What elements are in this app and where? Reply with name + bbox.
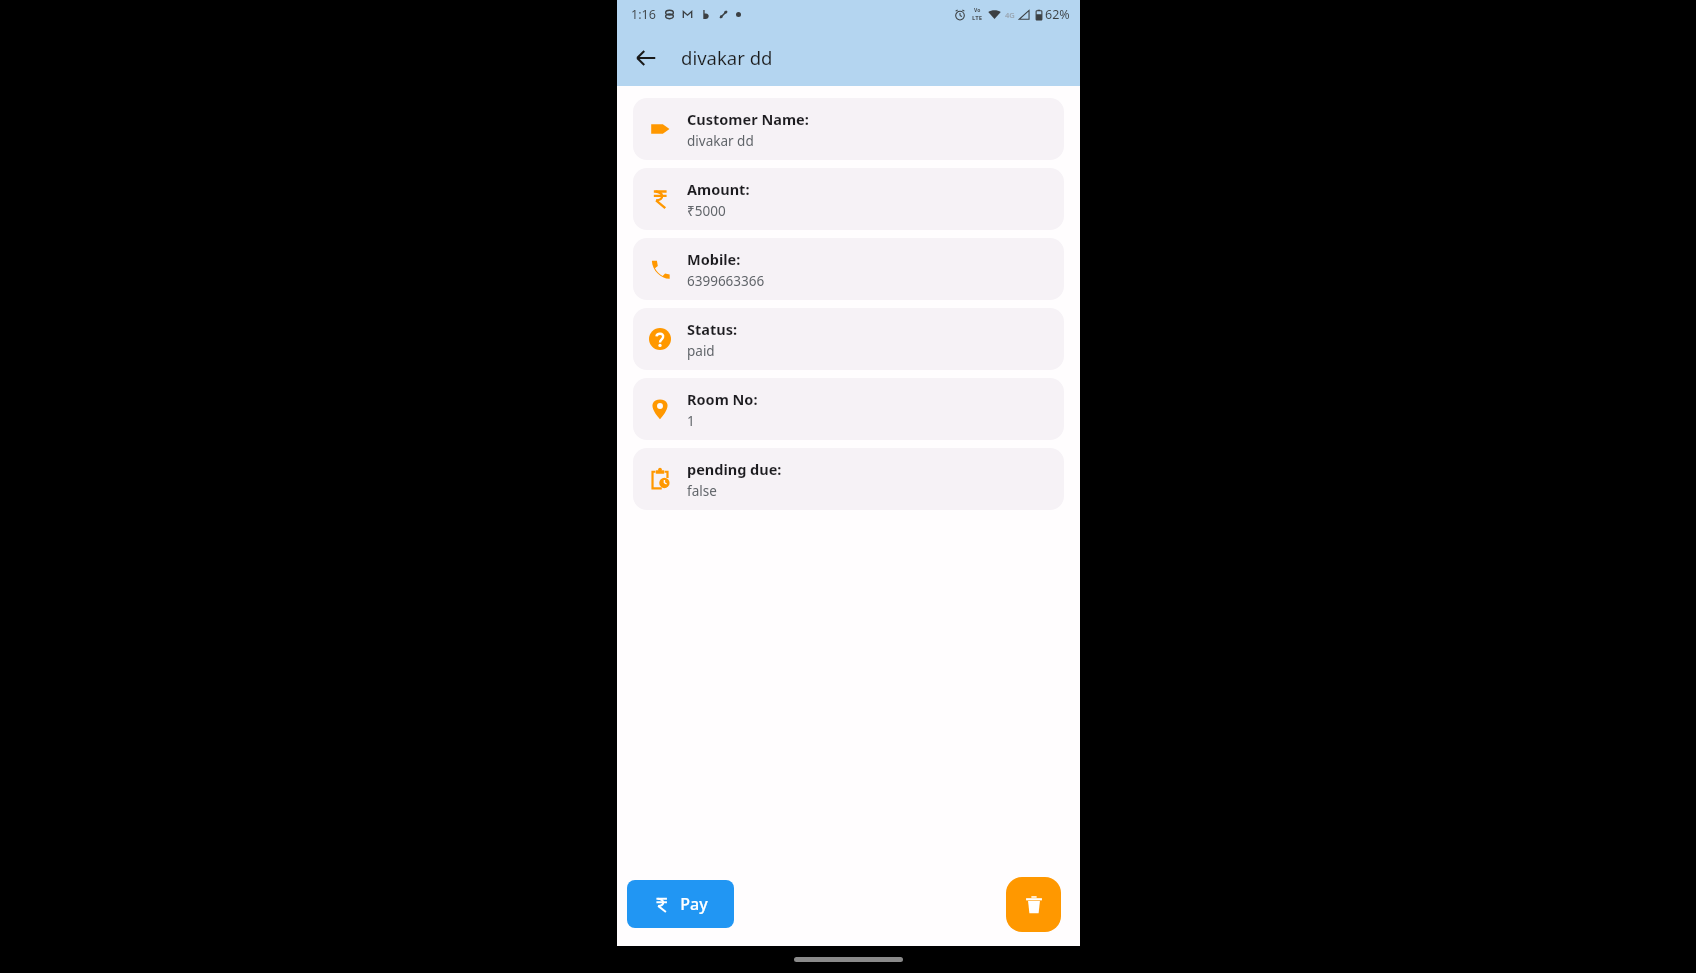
staticText: 62%: [1045, 6, 1070, 23]
staticText: ₹5000: [687, 202, 726, 220]
button[interactable]: Back: [623, 35, 669, 81]
staticText: LTE: [972, 14, 983, 22]
staticText: 1:16: [631, 6, 656, 23]
staticText: 1: [687, 412, 695, 430]
staticText: Vo: [974, 7, 981, 14]
staticText: pending due:: [687, 459, 782, 479]
staticText: Status:: [687, 319, 738, 339]
staticText: Room No:: [687, 389, 758, 409]
button[interactable]: Pay: [627, 880, 734, 928]
button[interactable]: Status:: [633, 308, 1064, 370]
button[interactable]: Room No:: [633, 378, 1064, 440]
staticText: Pay: [680, 893, 708, 915]
button[interactable]: Delete: [1006, 877, 1061, 932]
staticText: 6399663366: [687, 272, 765, 290]
button[interactable]: Amount:: [633, 168, 1064, 230]
staticText: Amount:: [687, 179, 750, 199]
staticText: Mobile:: [687, 249, 741, 269]
staticText: false: [687, 482, 717, 500]
staticText: divakar dd: [687, 132, 754, 150]
staticText: divakar dd: [681, 45, 773, 70]
staticText: 4G: [1005, 10, 1015, 20]
button[interactable]: Mobile:: [633, 238, 1064, 300]
staticText: Customer Name:: [687, 109, 809, 129]
button[interactable]: Customer Name:: [633, 98, 1064, 160]
button[interactable]: pending due:: [633, 448, 1064, 510]
staticText: paid: [687, 342, 715, 360]
